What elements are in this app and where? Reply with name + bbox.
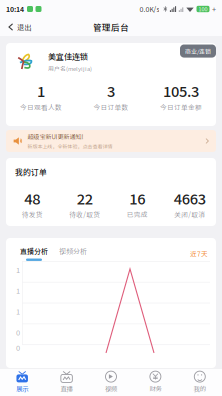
staticText: 0.0K/s (139, 4, 159, 14)
button[interactable]: 超级宝新UI更新通知! (6, 130, 216, 152)
staticText: 美宜佳连锁 (48, 50, 88, 62)
staticText: 10:14 (6, 4, 24, 14)
staticText: 0 (16, 342, 20, 353)
button[interactable]: 直播分析 (6, 246, 48, 261)
button[interactable]: 视频分析 (48, 246, 87, 261)
staticText: 今日订单数 (93, 102, 128, 112)
staticText: 直播 (61, 384, 73, 393)
button[interactable]: 退出 (0, 18, 39, 36)
staticText: + (212, 4, 216, 14)
staticText: 新版本上线，全新体验，点击查看详情 (27, 142, 112, 150)
staticText: 3 (107, 80, 115, 101)
staticText: 退出 (17, 22, 31, 32)
staticText: 16 (129, 187, 145, 209)
staticText: 财务 (149, 384, 161, 393)
staticText: 我的 (194, 384, 206, 393)
button[interactable]: 我的 (178, 368, 222, 396)
staticText: 直播分析 (20, 246, 48, 256)
staticText: 105.3 (163, 80, 199, 101)
staticText: 已完成 (127, 210, 148, 219)
button[interactable]: 近7天 (190, 249, 216, 258)
staticText: 100 (198, 5, 207, 13)
staticText: 1 (16, 306, 20, 317)
button[interactable]: 展示 (0, 368, 44, 396)
staticText: 超级宝新UI更新通知! (27, 132, 83, 141)
button[interactable]: 财务 (133, 368, 178, 396)
staticText: 视频分析 (59, 246, 87, 256)
staticText: 商业/连锁 (185, 47, 211, 55)
staticText: 待收/取货 (69, 210, 100, 219)
staticText: 今日观看人数 (20, 102, 62, 112)
button[interactable]: 直播 (44, 368, 89, 396)
staticText: 待发货 (22, 210, 43, 219)
staticText: 我的订单 (15, 166, 47, 177)
staticText: 48 (24, 187, 40, 209)
staticText: 22 (77, 187, 93, 209)
staticText: 管理后台 (93, 21, 129, 33)
staticText: 展示 (16, 384, 28, 393)
staticText: 1 (37, 80, 45, 101)
staticText: 关闭/取消 (174, 210, 205, 219)
button[interactable]: 商业/连锁 (180, 44, 216, 58)
staticText: 近7天 (190, 249, 208, 258)
button[interactable]: 视频 (89, 368, 133, 396)
staticText: 1 (16, 264, 20, 275)
staticText: 0 (16, 327, 20, 337)
staticText: 今日订单金额 (160, 102, 202, 112)
staticText: 1 (16, 285, 20, 296)
staticText: 视频 (105, 384, 117, 393)
staticText: 用户名(melyijia) (48, 64, 92, 73)
staticText: 4663 (174, 187, 206, 209)
